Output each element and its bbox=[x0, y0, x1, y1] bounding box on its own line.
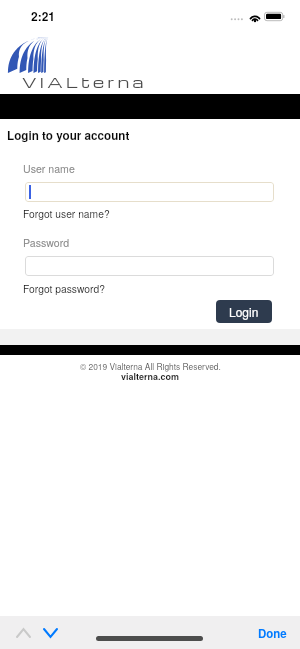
staticText: © 2019 Vialterna All Rights Reserved. bbox=[80, 360, 221, 372]
button[interactable]: Forgot password? bbox=[23, 281, 105, 296]
button[interactable]: Done bbox=[252, 620, 293, 646]
staticText: Login to your account bbox=[7, 127, 130, 144]
staticText: 2:21 bbox=[31, 7, 56, 24]
button[interactable]: Next field bbox=[38, 616, 68, 649]
staticText: User name bbox=[23, 161, 75, 176]
staticText: Password bbox=[23, 235, 70, 250]
button[interactable] bbox=[25, 182, 274, 202]
button[interactable]: Previous field bbox=[8, 616, 38, 649]
button[interactable]: Login bbox=[216, 300, 272, 323]
button[interactable]: Forgot user name? bbox=[23, 206, 110, 221]
staticText: vialterna.com bbox=[121, 370, 179, 383]
staticText: VIALterna bbox=[22, 71, 147, 92]
button[interactable] bbox=[25, 256, 274, 276]
staticText: Done bbox=[258, 625, 287, 641]
staticText: Login bbox=[229, 303, 259, 320]
